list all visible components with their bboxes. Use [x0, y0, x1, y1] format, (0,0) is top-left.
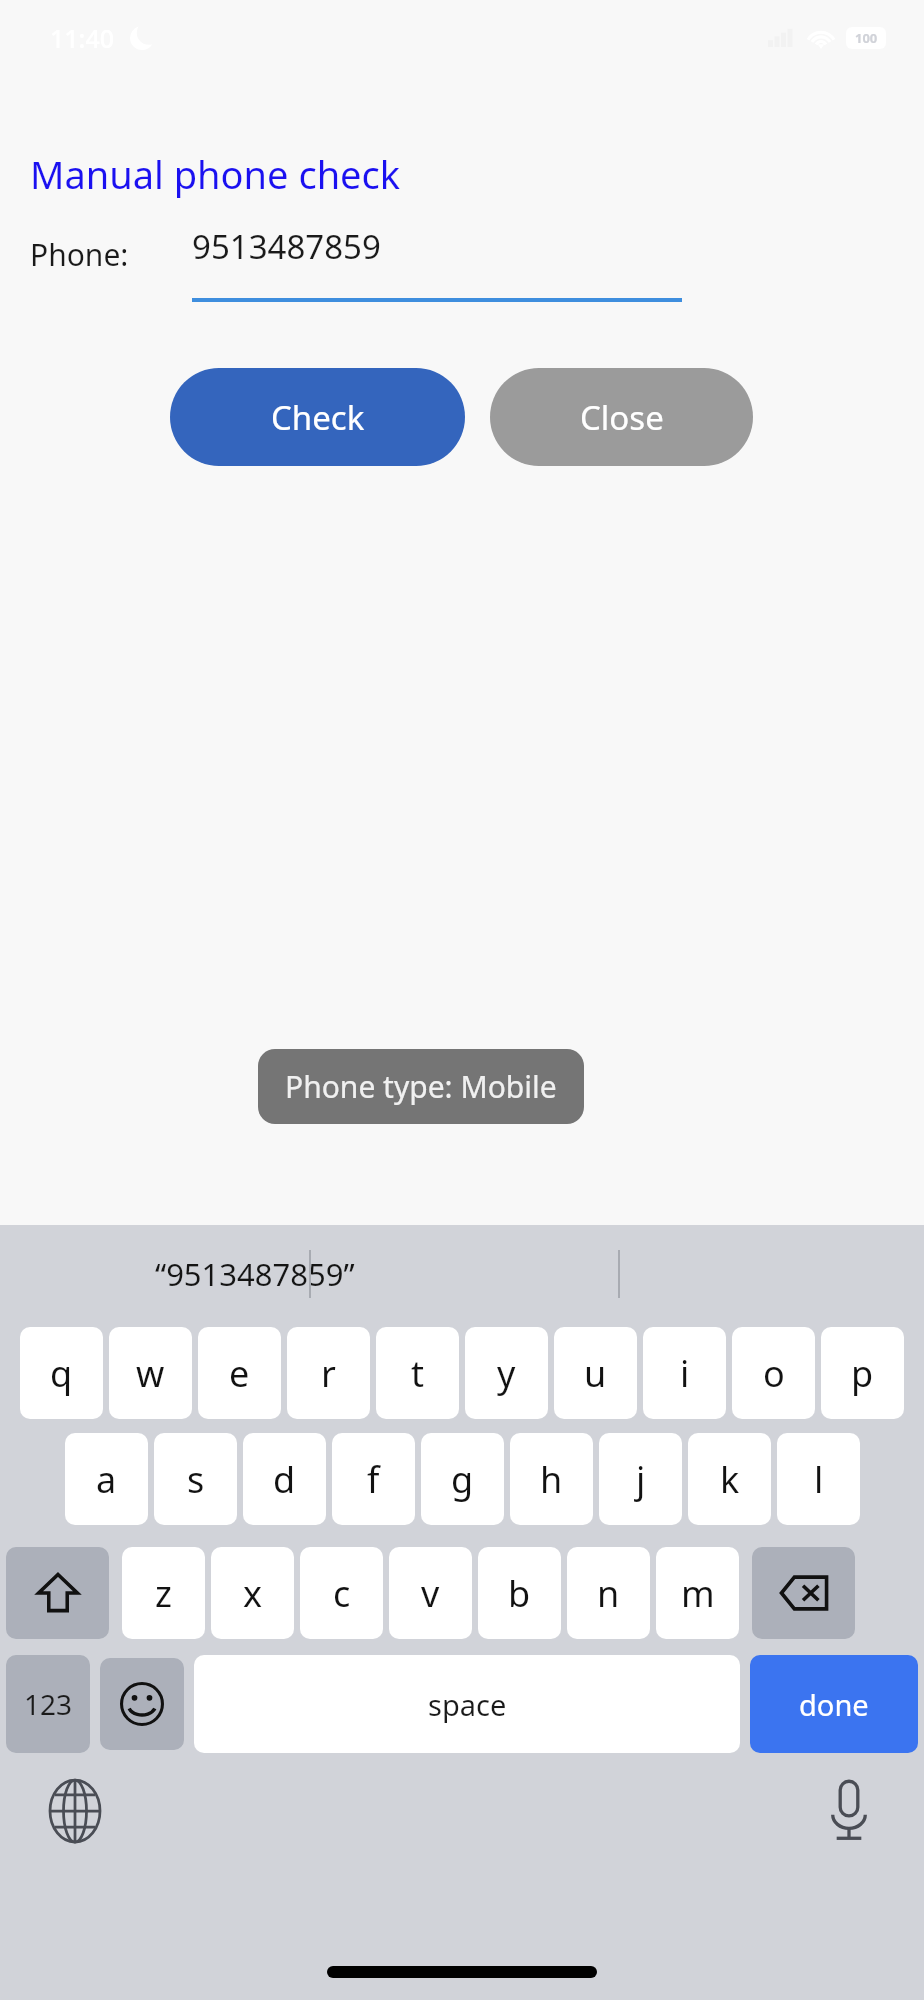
staticText: space — [428, 1685, 507, 1724]
button[interactable]: 123 — [6, 1655, 90, 1753]
button[interactable]: n — [567, 1547, 650, 1639]
staticText: t — [411, 1349, 424, 1398]
button[interactable]: u — [554, 1327, 637, 1419]
button[interactable]: Backspace — [752, 1547, 855, 1639]
button[interactable]: v — [389, 1547, 472, 1639]
staticText: 123 — [24, 1685, 73, 1723]
button[interactable]: q — [20, 1327, 103, 1419]
staticText: s — [187, 1455, 205, 1504]
staticText: w — [136, 1349, 165, 1398]
staticText: Manual phone check — [30, 148, 401, 200]
staticText: done — [799, 1685, 869, 1724]
staticText: g — [451, 1455, 474, 1504]
staticText: k — [720, 1455, 740, 1504]
staticText: p — [851, 1349, 874, 1398]
button[interactable]: b — [478, 1547, 561, 1639]
staticText: y — [497, 1349, 516, 1398]
button[interactable]: y — [465, 1327, 548, 1419]
staticText: m — [681, 1569, 715, 1618]
staticText: q — [50, 1349, 73, 1398]
button[interactable]: Shift — [6, 1547, 109, 1639]
staticText: e — [229, 1349, 250, 1398]
button[interactable]: f — [332, 1433, 415, 1525]
staticText: a — [96, 1455, 117, 1504]
button[interactable]: g — [421, 1433, 504, 1525]
button[interactable]: Change keyboard language — [44, 1780, 106, 1842]
button[interactable]: i — [643, 1327, 726, 1419]
button[interactable]: j — [599, 1433, 682, 1525]
button[interactable]: h — [510, 1433, 593, 1525]
button[interactable]: x — [211, 1547, 294, 1639]
staticText: Phone: — [30, 234, 129, 275]
button[interactable]: t — [376, 1327, 459, 1419]
staticText: c — [333, 1569, 351, 1618]
button[interactable]: m — [656, 1547, 739, 1639]
button[interactable]: c — [300, 1547, 383, 1639]
staticText: i — [680, 1349, 690, 1398]
staticText: l — [814, 1455, 824, 1504]
staticText: n — [597, 1569, 620, 1618]
button[interactable]: space — [194, 1655, 740, 1753]
button[interactable]: w — [109, 1327, 192, 1419]
staticText: o — [763, 1349, 785, 1398]
button[interactable]: r — [287, 1327, 370, 1419]
button[interactable]: Emoji — [100, 1658, 184, 1750]
button[interactable]: z — [122, 1547, 205, 1639]
button[interactable]: a — [65, 1433, 148, 1525]
button[interactable]: d — [243, 1433, 326, 1525]
staticText: z — [155, 1569, 172, 1618]
staticText: u — [584, 1349, 607, 1398]
staticText: b — [508, 1569, 531, 1618]
button[interactable]: o — [732, 1327, 815, 1419]
button[interactable]: e — [198, 1327, 281, 1419]
staticText: Phone type: Mobile — [285, 1066, 557, 1107]
staticText: j — [636, 1455, 646, 1504]
button[interactable]: p — [821, 1327, 904, 1419]
staticText: d — [273, 1455, 296, 1504]
staticText: h — [540, 1455, 563, 1504]
staticText: 9513487859 — [192, 224, 381, 269]
staticText: r — [321, 1349, 336, 1398]
staticText: x — [243, 1569, 263, 1618]
button[interactable]: Voice input — [818, 1780, 880, 1842]
staticText: v — [421, 1569, 440, 1618]
button[interactable]: s — [154, 1433, 237, 1525]
staticText: “9513487859” — [155, 1253, 355, 1295]
staticText: Close — [580, 395, 664, 440]
staticText: f — [367, 1455, 380, 1504]
button[interactable]: Close — [490, 368, 753, 466]
button[interactable]: Check — [170, 368, 465, 466]
button[interactable]: k — [688, 1433, 771, 1525]
button[interactable]: l — [777, 1433, 860, 1525]
staticText: 100 — [855, 29, 878, 47]
button[interactable]: done — [750, 1655, 918, 1753]
staticText: Check — [271, 395, 365, 440]
